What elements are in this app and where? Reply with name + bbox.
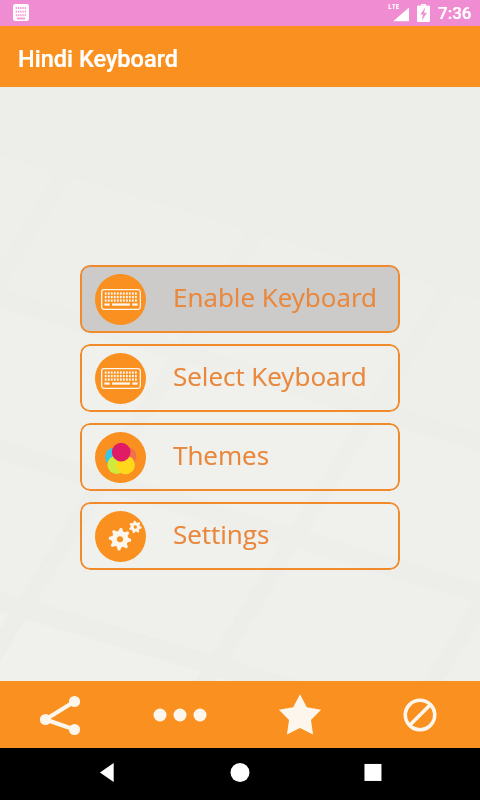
button[interactable]: Settings (80, 502, 400, 570)
staticText: Themes (173, 437, 270, 472)
staticText: Hindi Keyboard (18, 45, 179, 73)
button[interactable]: Rate app (240, 681, 360, 748)
button[interactable]: Themes (80, 423, 400, 491)
button[interactable]: Enable Keyboard (80, 265, 400, 333)
button[interactable]: More options (120, 681, 240, 748)
button[interactable]: Remove ads (360, 681, 480, 748)
staticText: Select Keyboard (173, 358, 367, 393)
staticText: Settings (173, 516, 270, 551)
staticText: 7:36 (438, 3, 472, 23)
staticText: Enable Keyboard (173, 279, 377, 314)
button[interactable]: Select Keyboard (80, 344, 400, 412)
button[interactable]: Share (0, 681, 120, 748)
